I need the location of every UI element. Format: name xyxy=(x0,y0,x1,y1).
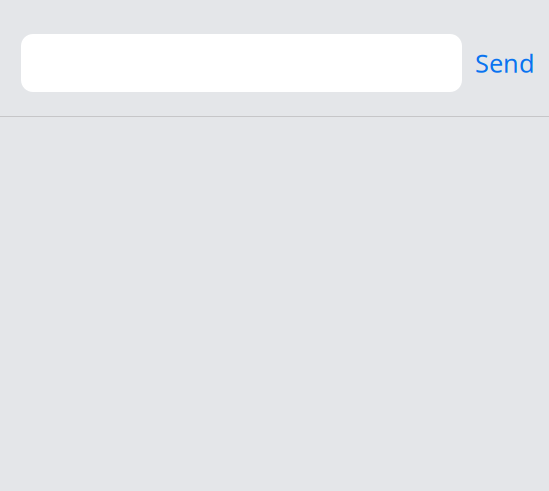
staticText: Send xyxy=(475,46,535,80)
button[interactable]: Send xyxy=(475,46,535,80)
